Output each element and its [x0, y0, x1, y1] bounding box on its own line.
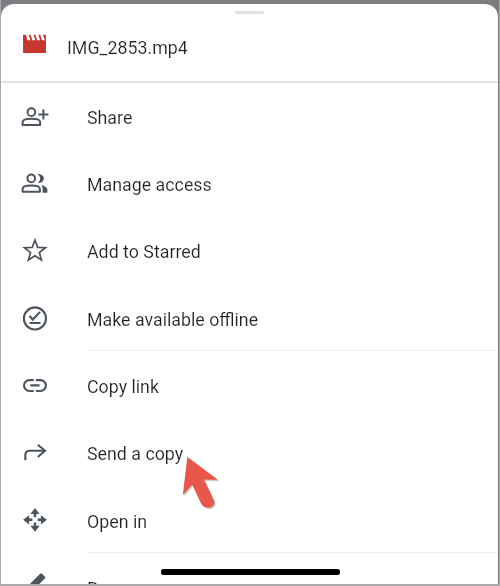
button[interactable]: Copy link: [1, 352, 498, 420]
button[interactable]: IMG_2853.mp4: [1, 19, 498, 76]
button[interactable]: Open in: [1, 487, 498, 555]
staticText: Manage access: [87, 174, 212, 195]
staticText: Make available offline: [87, 309, 259, 330]
staticText: Rename: [87, 578, 152, 585]
staticText: Send a copy: [87, 443, 184, 464]
staticText: IMG_2853.mp4: [67, 37, 188, 58]
button[interactable]: Manage access: [1, 150, 498, 218]
button[interactable]: Share: [1, 83, 498, 151]
staticText: Add to Starred: [87, 241, 201, 262]
button[interactable]: Send a copy: [1, 419, 498, 487]
staticText: Copy link: [87, 376, 159, 397]
button[interactable]: Make available offline: [1, 285, 498, 353]
other: Home gesture bar: [161, 569, 340, 575]
staticText: Share: [87, 107, 133, 128]
button[interactable]: Rename: [1, 554, 498, 585]
staticText: Open in: [87, 511, 148, 532]
button[interactable]: Add to Starred: [1, 217, 498, 285]
